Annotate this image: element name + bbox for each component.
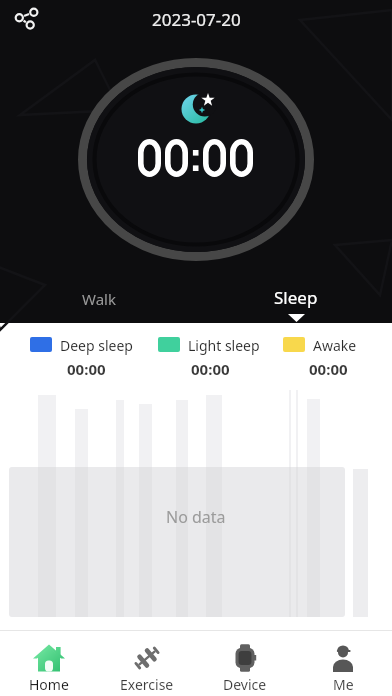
button[interactable]: Home <box>0 631 98 696</box>
button[interactable]: Device <box>196 631 294 696</box>
staticText: Me <box>333 675 354 694</box>
staticText: 00:00 <box>309 359 348 379</box>
button[interactable]: Exercise <box>98 631 196 696</box>
staticText: Light sleep <box>188 336 260 355</box>
staticText: 00:00 <box>191 359 230 379</box>
staticText: Walk <box>82 289 116 309</box>
button[interactable]: Sleep <box>236 284 356 310</box>
staticText: Deep sleep <box>60 336 133 355</box>
staticText: Sleep <box>274 286 318 309</box>
staticText: Exercise <box>120 675 174 694</box>
staticText: 00:00 <box>67 359 106 379</box>
staticText: No data <box>166 506 226 528</box>
staticText: Device <box>223 675 267 694</box>
button[interactable]: 2023-07-20 <box>152 8 241 31</box>
button[interactable]: Me <box>294 631 392 696</box>
button[interactable]: Walk <box>39 287 159 311</box>
staticText: Awake <box>313 336 357 355</box>
button[interactable] <box>8 2 42 36</box>
staticText: Home <box>29 675 69 694</box>
